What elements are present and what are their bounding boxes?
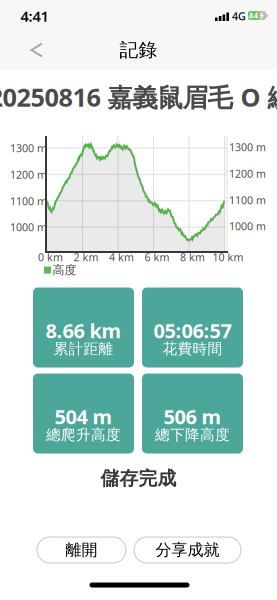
staticText: 總下降高度 — [155, 426, 230, 444]
staticText: 1300 m — [10, 141, 47, 155]
staticText: 1200 m — [229, 166, 266, 181]
staticText: 1000 m — [229, 219, 266, 233]
staticText: 4:41 — [20, 6, 48, 26]
staticText: 4G — [232, 9, 246, 23]
staticText: 44 — [248, 10, 258, 21]
staticText: 05:06:57 — [153, 317, 231, 344]
staticText: 儲存完成 — [100, 467, 176, 490]
staticText: 8.66 km — [45, 317, 121, 344]
staticText: 1100 m — [229, 193, 266, 207]
staticText: 花費時間 — [162, 340, 222, 358]
button[interactable]: Back — [0, 0, 277, 70]
staticText: 10 km — [213, 250, 244, 264]
staticText: 總爬升高度 — [46, 426, 121, 444]
staticText: 2 km — [73, 250, 98, 264]
staticText: 0 km — [38, 250, 63, 264]
staticText: 4 km — [109, 250, 134, 264]
staticText: 離開 — [65, 540, 97, 560]
staticText: 1200 m — [10, 167, 47, 182]
button[interactable]: 離開 — [37, 537, 126, 563]
staticText: 20250816 嘉義鼠眉毛 O 繞 — [0, 80, 277, 114]
staticText: 1300 m — [229, 140, 266, 154]
staticText: 8 km — [180, 250, 205, 264]
staticText: 1000 m — [10, 220, 47, 234]
staticText: 6 km — [145, 250, 170, 264]
staticText: 504 m — [54, 403, 112, 430]
staticText: 506 m — [163, 403, 221, 430]
staticText: 1100 m — [10, 194, 47, 208]
staticText: 高度 — [52, 263, 76, 277]
staticText: 累計距離 — [53, 340, 113, 358]
staticText: 記錄 — [119, 38, 157, 61]
staticText: 分享成就 — [155, 540, 219, 560]
button[interactable]: 分享成就 — [134, 537, 241, 563]
